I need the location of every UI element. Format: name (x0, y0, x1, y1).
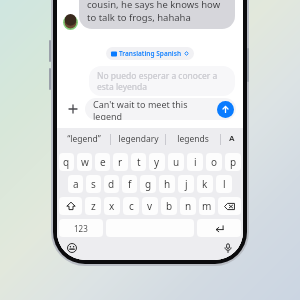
staticText: j (185, 177, 188, 191)
staticText: z (91, 199, 96, 213)
staticText: t (137, 155, 141, 169)
button[interactable]: h (159, 175, 175, 193)
button[interactable]: Emoji (65, 241, 79, 255)
staticText: h (164, 177, 171, 191)
button[interactable]: z (85, 197, 101, 215)
staticText: r (118, 155, 123, 169)
staticText: u (173, 155, 180, 169)
button[interactable]: Dictation (221, 241, 235, 255)
button[interactable]: r (113, 153, 128, 171)
button[interactable]: “legend” (57, 128, 110, 150)
staticText: “legend” (67, 133, 101, 145)
button[interactable]: n (180, 197, 196, 215)
staticText: No puedo esperar a conocer a esta leyend… (97, 70, 227, 92)
staticText: 123 (74, 223, 88, 234)
button[interactable]: Backspace (218, 197, 241, 215)
staticText: w (81, 155, 89, 169)
staticText: v (147, 199, 153, 213)
staticText: s (91, 177, 96, 191)
button[interactable]: Text effects (221, 128, 243, 150)
button[interactable]: Translating Spanish (106, 47, 194, 60)
staticText: k (202, 177, 208, 191)
button[interactable]: p (225, 153, 241, 171)
button[interactable]: u (168, 153, 184, 171)
staticText: Translating Spanish (119, 49, 182, 58)
button[interactable]: 123 (59, 219, 103, 237)
button[interactable]: w (77, 153, 92, 171)
staticText: You will meet my favorite cousin, he say… (87, 0, 227, 24)
button[interactable]: d (104, 175, 119, 193)
button[interactable]: x (104, 197, 120, 215)
staticText: legends (177, 133, 209, 145)
button[interactable]: j (178, 175, 194, 193)
staticText: l (223, 177, 226, 191)
button[interactable]: l (216, 175, 232, 193)
staticText: y (154, 155, 160, 169)
staticText: d (108, 177, 115, 191)
button[interactable]: i (187, 153, 203, 171)
button[interactable]: g (140, 175, 156, 193)
staticText: m (202, 199, 212, 213)
button[interactable]: m (199, 197, 215, 215)
button[interactable]: Add attachment (63, 99, 83, 119)
button[interactable]: t (131, 153, 146, 171)
staticText: p (230, 155, 237, 169)
staticText: legendary (118, 133, 159, 145)
button[interactable]: k (197, 175, 213, 193)
button[interactable]: b (161, 197, 177, 215)
staticText: q (63, 155, 70, 169)
button[interactable]: c (123, 197, 139, 215)
button[interactable]: Return (197, 219, 241, 237)
staticText: g (145, 177, 152, 191)
button[interactable]: v (142, 197, 158, 215)
staticText: b (166, 199, 173, 213)
staticText: i (194, 155, 197, 169)
staticText: Can't wait to meet this legend (93, 98, 217, 120)
button[interactable]: f (122, 175, 137, 193)
staticText: n (185, 199, 192, 213)
button[interactable]: Can't wait to meet this legend (85, 98, 236, 120)
staticText: o (211, 155, 218, 169)
staticText: 𝐀 (229, 135, 235, 143)
staticText: a (73, 177, 79, 191)
button[interactable]: legends (166, 128, 220, 150)
button[interactable]: legendary (111, 128, 165, 150)
staticText: x (109, 199, 115, 213)
staticText: e (100, 155, 106, 169)
button[interactable]: y (149, 153, 165, 171)
button[interactable]: Shift (59, 197, 82, 215)
button[interactable]: q (59, 153, 74, 171)
button[interactable]: e (95, 153, 110, 171)
button[interactable]: a (68, 175, 83, 193)
staticText: c (129, 199, 134, 213)
button[interactable]: o (206, 153, 222, 171)
button[interactable]: Send (217, 101, 234, 118)
staticText: f (128, 177, 132, 191)
button[interactable]: s (86, 175, 101, 193)
